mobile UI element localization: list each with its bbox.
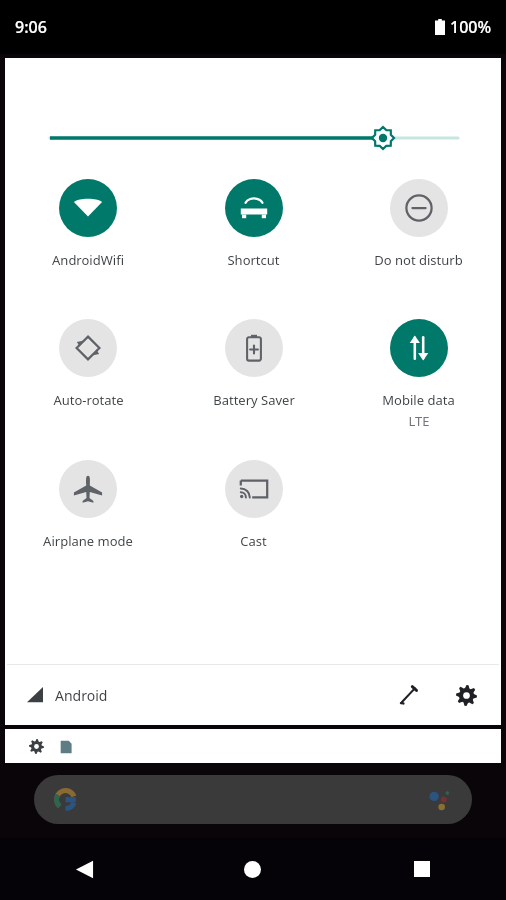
staticText: 9:06	[15, 16, 47, 38]
staticText: LTE	[408, 412, 430, 430]
staticText: Shortcut	[227, 251, 280, 269]
button[interactable]: Home	[168, 838, 337, 900]
staticText: Cast	[240, 532, 267, 550]
button[interactable]: Search	[34, 775, 472, 824]
button[interactable]: Back	[0, 838, 168, 900]
staticText: Battery Saver	[213, 391, 295, 409]
staticText: Mobile data	[382, 391, 455, 409]
button[interactable]: Battery Saver	[171, 315, 336, 413]
button[interactable]: Do not disturb	[336, 175, 501, 273]
button[interactable]: Edit	[384, 671, 432, 719]
button[interactable]: Shortcut	[171, 175, 336, 273]
button[interactable]: Recents	[337, 838, 506, 900]
button[interactable]: Auto-rotate	[5, 315, 171, 413]
button[interactable]: Airplane mode	[5, 456, 171, 554]
button[interactable]: Settings	[442, 671, 490, 719]
staticText: Android	[55, 686, 108, 705]
button[interactable]: Cast	[171, 456, 336, 554]
staticText: 100%	[450, 16, 492, 38]
staticText: AndroidWifi	[52, 251, 124, 269]
button[interactable]: Mobile data	[336, 315, 501, 434]
staticText: Do not disturb	[374, 251, 463, 269]
button[interactable]: AndroidWifi	[5, 175, 171, 273]
staticText: Airplane mode	[43, 532, 133, 550]
staticText: Auto-rotate	[53, 391, 124, 409]
button[interactable]: Brightness	[5, 118, 501, 158]
